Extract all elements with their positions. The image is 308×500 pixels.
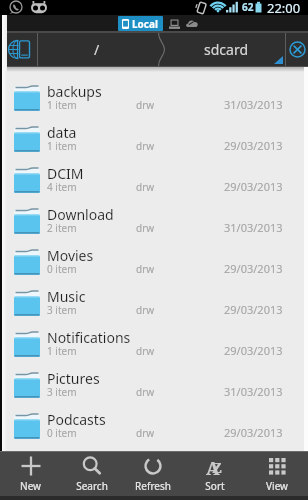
staticText: New [20, 479, 41, 493]
staticText: Podcasts [47, 410, 106, 429]
staticText: Z [212, 457, 223, 477]
button[interactable]: Podcasts [0, 407, 308, 448]
staticText: Local [132, 17, 158, 31]
button[interactable]: Pictures [0, 366, 308, 407]
staticText: Music [47, 287, 86, 306]
staticText: Sort [205, 479, 225, 493]
staticText: A [206, 456, 220, 478]
staticText: 1 item [47, 344, 77, 358]
staticText: drw [136, 139, 155, 153]
staticText: Refresh [135, 479, 171, 493]
staticText: drw [136, 426, 155, 440]
staticText: 2 item [47, 221, 77, 235]
staticText: drw [136, 262, 155, 276]
button[interactable]: data [0, 120, 308, 161]
staticText: Movies [47, 246, 94, 265]
staticText: Search [76, 479, 108, 493]
staticText: Pictures [47, 369, 100, 388]
button[interactable]: View [246, 452, 308, 496]
staticText: 29/03/2013 [224, 138, 283, 153]
button[interactable]: sdcard [168, 33, 285, 66]
staticText: View [266, 479, 288, 493]
staticText: 29/03/2013 [224, 343, 283, 358]
button[interactable]: Cloud storage [186, 17, 199, 30]
button[interactable]: Notifications [0, 325, 308, 366]
staticText: / [94, 40, 100, 59]
staticText: drw [136, 180, 155, 194]
staticText: 29/03/2013 [224, 302, 283, 317]
staticText: drw [136, 303, 155, 317]
button[interactable]: Local [118, 16, 163, 31]
button[interactable]: Search [61, 452, 122, 496]
staticText: backups [47, 82, 102, 101]
staticText: drw [136, 385, 155, 399]
staticText: DCIM [47, 164, 84, 183]
staticText: drw [136, 98, 155, 112]
staticText: 29/03/2013 [224, 179, 283, 194]
staticText: 0 item [47, 262, 77, 276]
button[interactable]: DCIM [0, 161, 308, 202]
staticText: 29/03/2013 [224, 425, 283, 440]
staticText: 1 item [47, 139, 77, 153]
staticText: data [47, 123, 77, 142]
button[interactable]: backups [0, 79, 308, 120]
button[interactable]: Network computers [169, 18, 181, 30]
staticText: 1 item [47, 98, 77, 112]
staticText: 29/03/2013 [224, 261, 283, 276]
staticText: 31/03/2013 [224, 220, 283, 235]
button[interactable]: / [38, 33, 155, 66]
staticText: 62 [242, 0, 254, 14]
button[interactable]: Close [286, 33, 308, 66]
button[interactable]: Download [0, 202, 308, 243]
staticText: 3 item [47, 385, 77, 399]
staticText: sdcard [204, 40, 249, 59]
staticText: 31/03/2013 [224, 384, 283, 399]
button[interactable]: New [0, 452, 61, 496]
staticText: 4 item [47, 180, 77, 194]
button[interactable]: Music [0, 284, 308, 325]
staticText: 3 item [47, 303, 77, 317]
staticText: drw [136, 221, 155, 235]
staticText: 22:00 [267, 0, 301, 14]
button[interactable]: A [184, 452, 246, 496]
staticText: Notifications [47, 328, 131, 347]
button[interactable]: Storage source [0, 33, 37, 66]
button[interactable]: Movies [0, 243, 308, 284]
staticText: drw [136, 344, 155, 358]
staticText: 0 item [47, 426, 77, 440]
staticText: Download [47, 205, 114, 224]
button[interactable]: Refresh [122, 452, 184, 496]
staticText: 31/03/2013 [224, 97, 283, 112]
